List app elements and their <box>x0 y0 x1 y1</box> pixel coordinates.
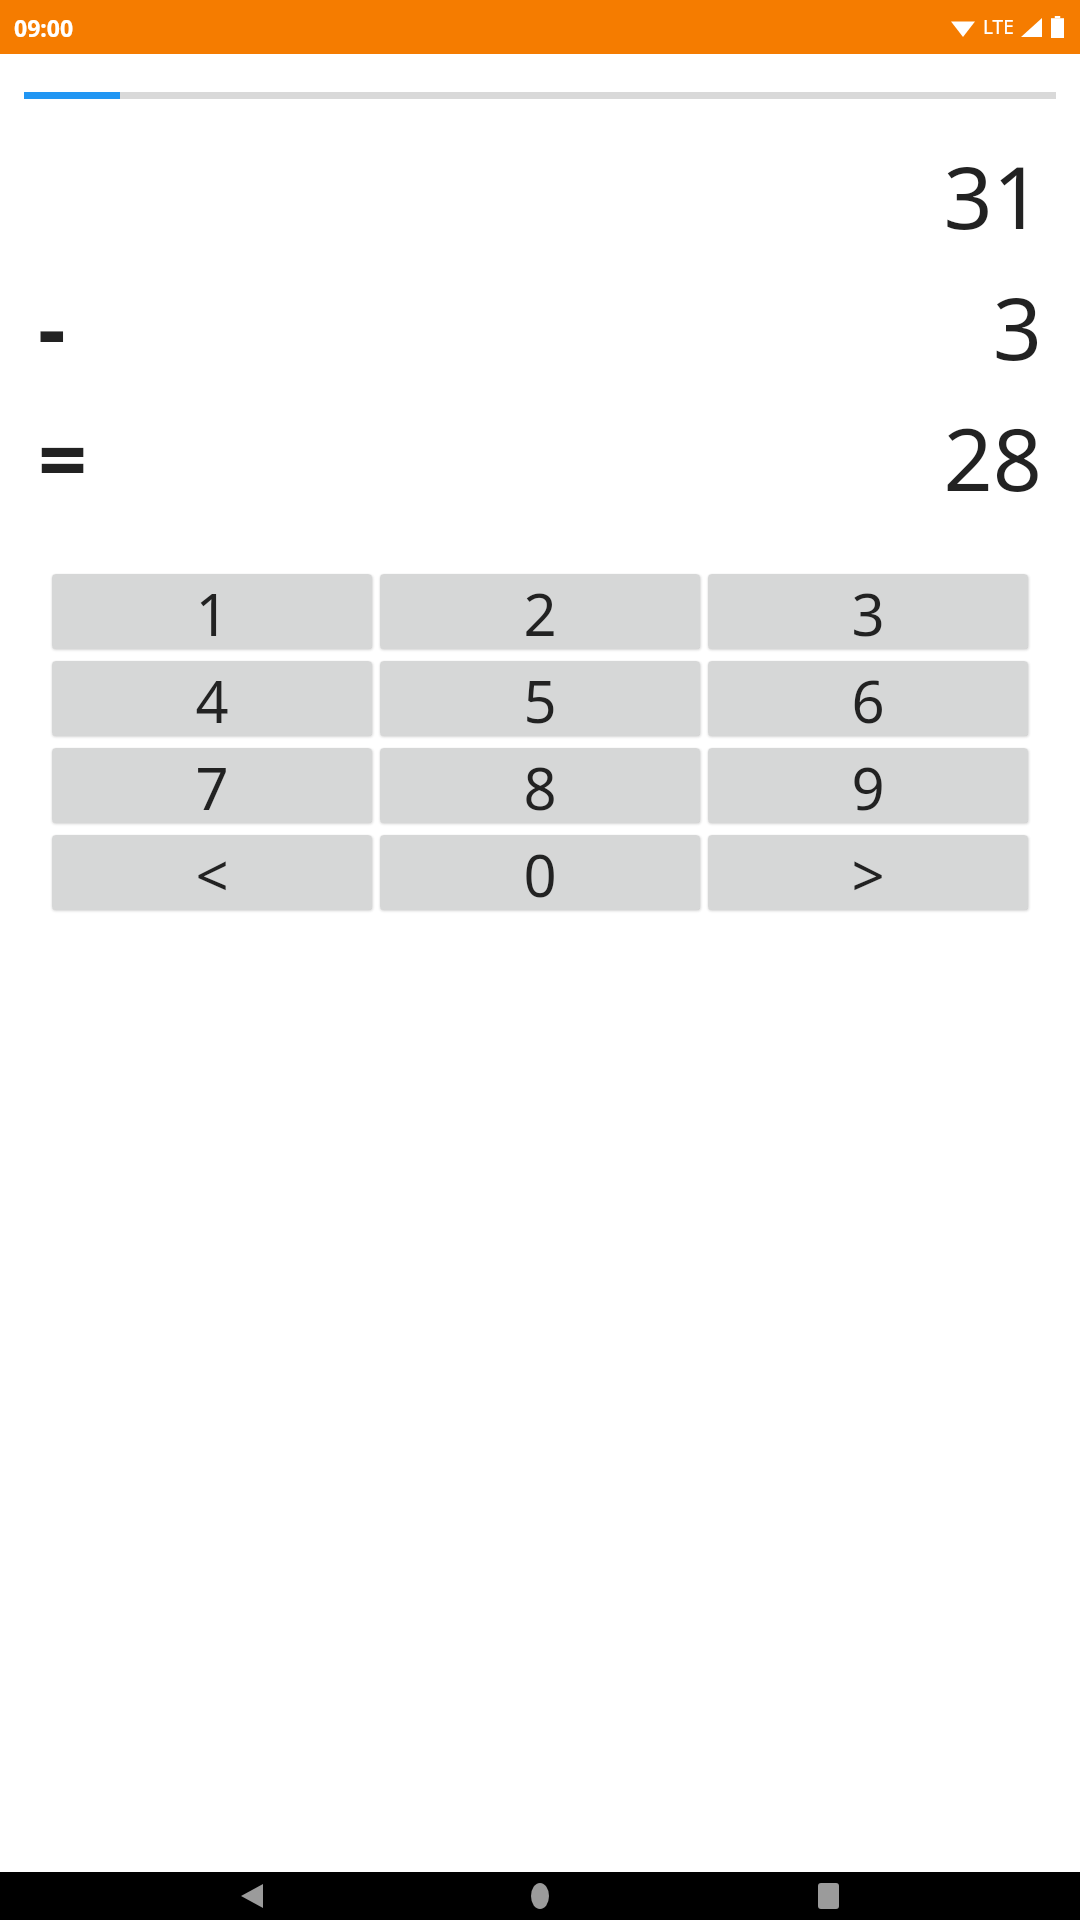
button[interactable]: 9 <box>708 748 1028 823</box>
staticText: 3 <box>992 268 1042 385</box>
staticText: = <box>38 399 88 516</box>
button[interactable]: Previous <box>52 835 372 910</box>
button[interactable]: 7 <box>52 748 372 823</box>
staticText: 09:00 <box>14 12 74 43</box>
staticText: < <box>195 835 229 910</box>
button[interactable]: 3 <box>708 574 1028 649</box>
staticText: 31 <box>943 137 1042 254</box>
button[interactable]: 5 <box>380 661 700 736</box>
button[interactable]: 2 <box>380 574 700 649</box>
staticText: 4 <box>195 661 229 736</box>
staticText: 3 <box>851 574 885 649</box>
staticText: 5 <box>523 661 557 736</box>
staticText: 9 <box>851 748 885 823</box>
button[interactable]: 6 <box>708 661 1028 736</box>
button[interactable]: Recent apps <box>792 1872 864 1920</box>
staticText: 8 <box>523 748 557 823</box>
button[interactable]: 8 <box>380 748 700 823</box>
button[interactable]: Back <box>216 1872 288 1920</box>
staticText: 7 <box>195 748 229 823</box>
staticText: 0 <box>523 835 557 910</box>
button[interactable]: 4 <box>52 661 372 736</box>
staticText: 1 <box>195 574 229 649</box>
staticText: > <box>851 835 885 910</box>
staticText: 28 <box>943 399 1042 516</box>
button[interactable]: Next <box>708 835 1028 910</box>
button[interactable]: Home <box>504 1872 576 1920</box>
button[interactable]: 1 <box>52 574 372 649</box>
button[interactable]: 0 <box>380 835 700 910</box>
staticText: 2 <box>523 574 557 649</box>
staticText: 6 <box>851 661 885 736</box>
staticText: LTE <box>983 14 1014 40</box>
staticText: - <box>38 268 66 385</box>
